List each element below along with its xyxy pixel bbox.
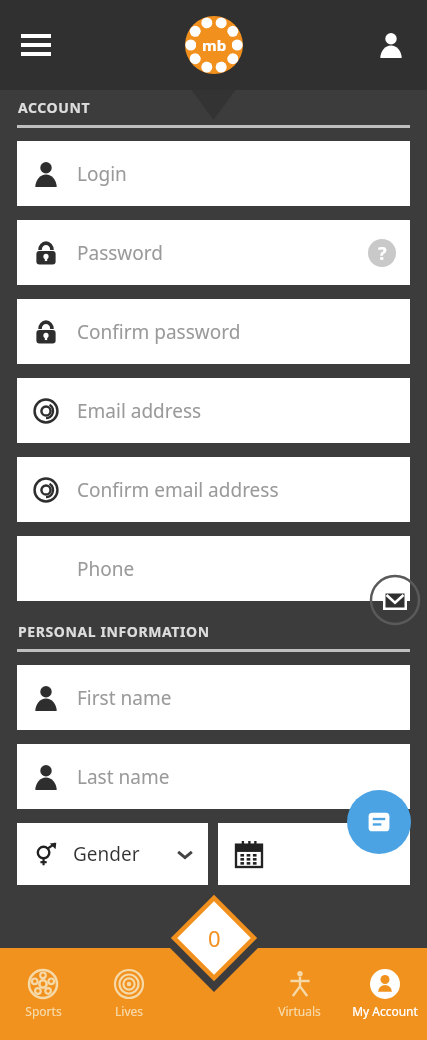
button[interactable]: Menu	[12, 21, 60, 69]
staticText: Email address	[77, 398, 202, 424]
button[interactable]: Password	[17, 220, 410, 285]
staticText: Password	[77, 240, 163, 266]
button[interactable]	[218, 823, 410, 885]
button[interactable]: Chat support	[347, 790, 411, 854]
button[interactable]: Gender	[17, 823, 208, 885]
button[interactable]: Lives	[86, 948, 172, 1040]
staticText: My Account	[352, 1003, 418, 1019]
button[interactable]: My Account	[342, 948, 427, 1040]
staticText: Confirm email address	[77, 477, 279, 503]
button[interactable]: Bet slip	[160, 884, 268, 992]
button[interactable]: Messages	[369, 574, 421, 626]
staticText: Phone	[77, 556, 135, 582]
staticText: Confirm password	[77, 319, 241, 345]
button[interactable]: Sports	[0, 948, 86, 1040]
button[interactable]: Confirm email address	[17, 457, 410, 522]
button[interactable]: Last name	[17, 744, 410, 809]
button[interactable]: Email address	[17, 378, 410, 443]
staticText: First name	[77, 685, 172, 711]
staticText: Virtuals	[278, 1003, 321, 1019]
staticText: Gender	[73, 841, 140, 867]
button[interactable]: Virtuals	[257, 948, 342, 1040]
staticText: Last name	[77, 764, 170, 790]
staticText: Sports	[25, 1003, 62, 1019]
staticText: Login	[77, 161, 127, 187]
button[interactable]: Help	[368, 239, 396, 267]
button[interactable]: Profile	[369, 23, 413, 67]
button[interactable]: Login	[17, 141, 410, 206]
staticText: 0	[208, 923, 221, 953]
staticText: PERSONAL INFORMATION	[18, 622, 210, 641]
button[interactable]: Confirm password	[17, 299, 410, 364]
button[interactable]: First name	[17, 665, 410, 730]
staticText: ACCOUNT	[18, 98, 91, 117]
staticText: ?	[378, 241, 387, 266]
button[interactable]: Phone	[17, 536, 410, 601]
staticText: mb	[202, 35, 227, 55]
staticText: Lives	[115, 1003, 143, 1019]
